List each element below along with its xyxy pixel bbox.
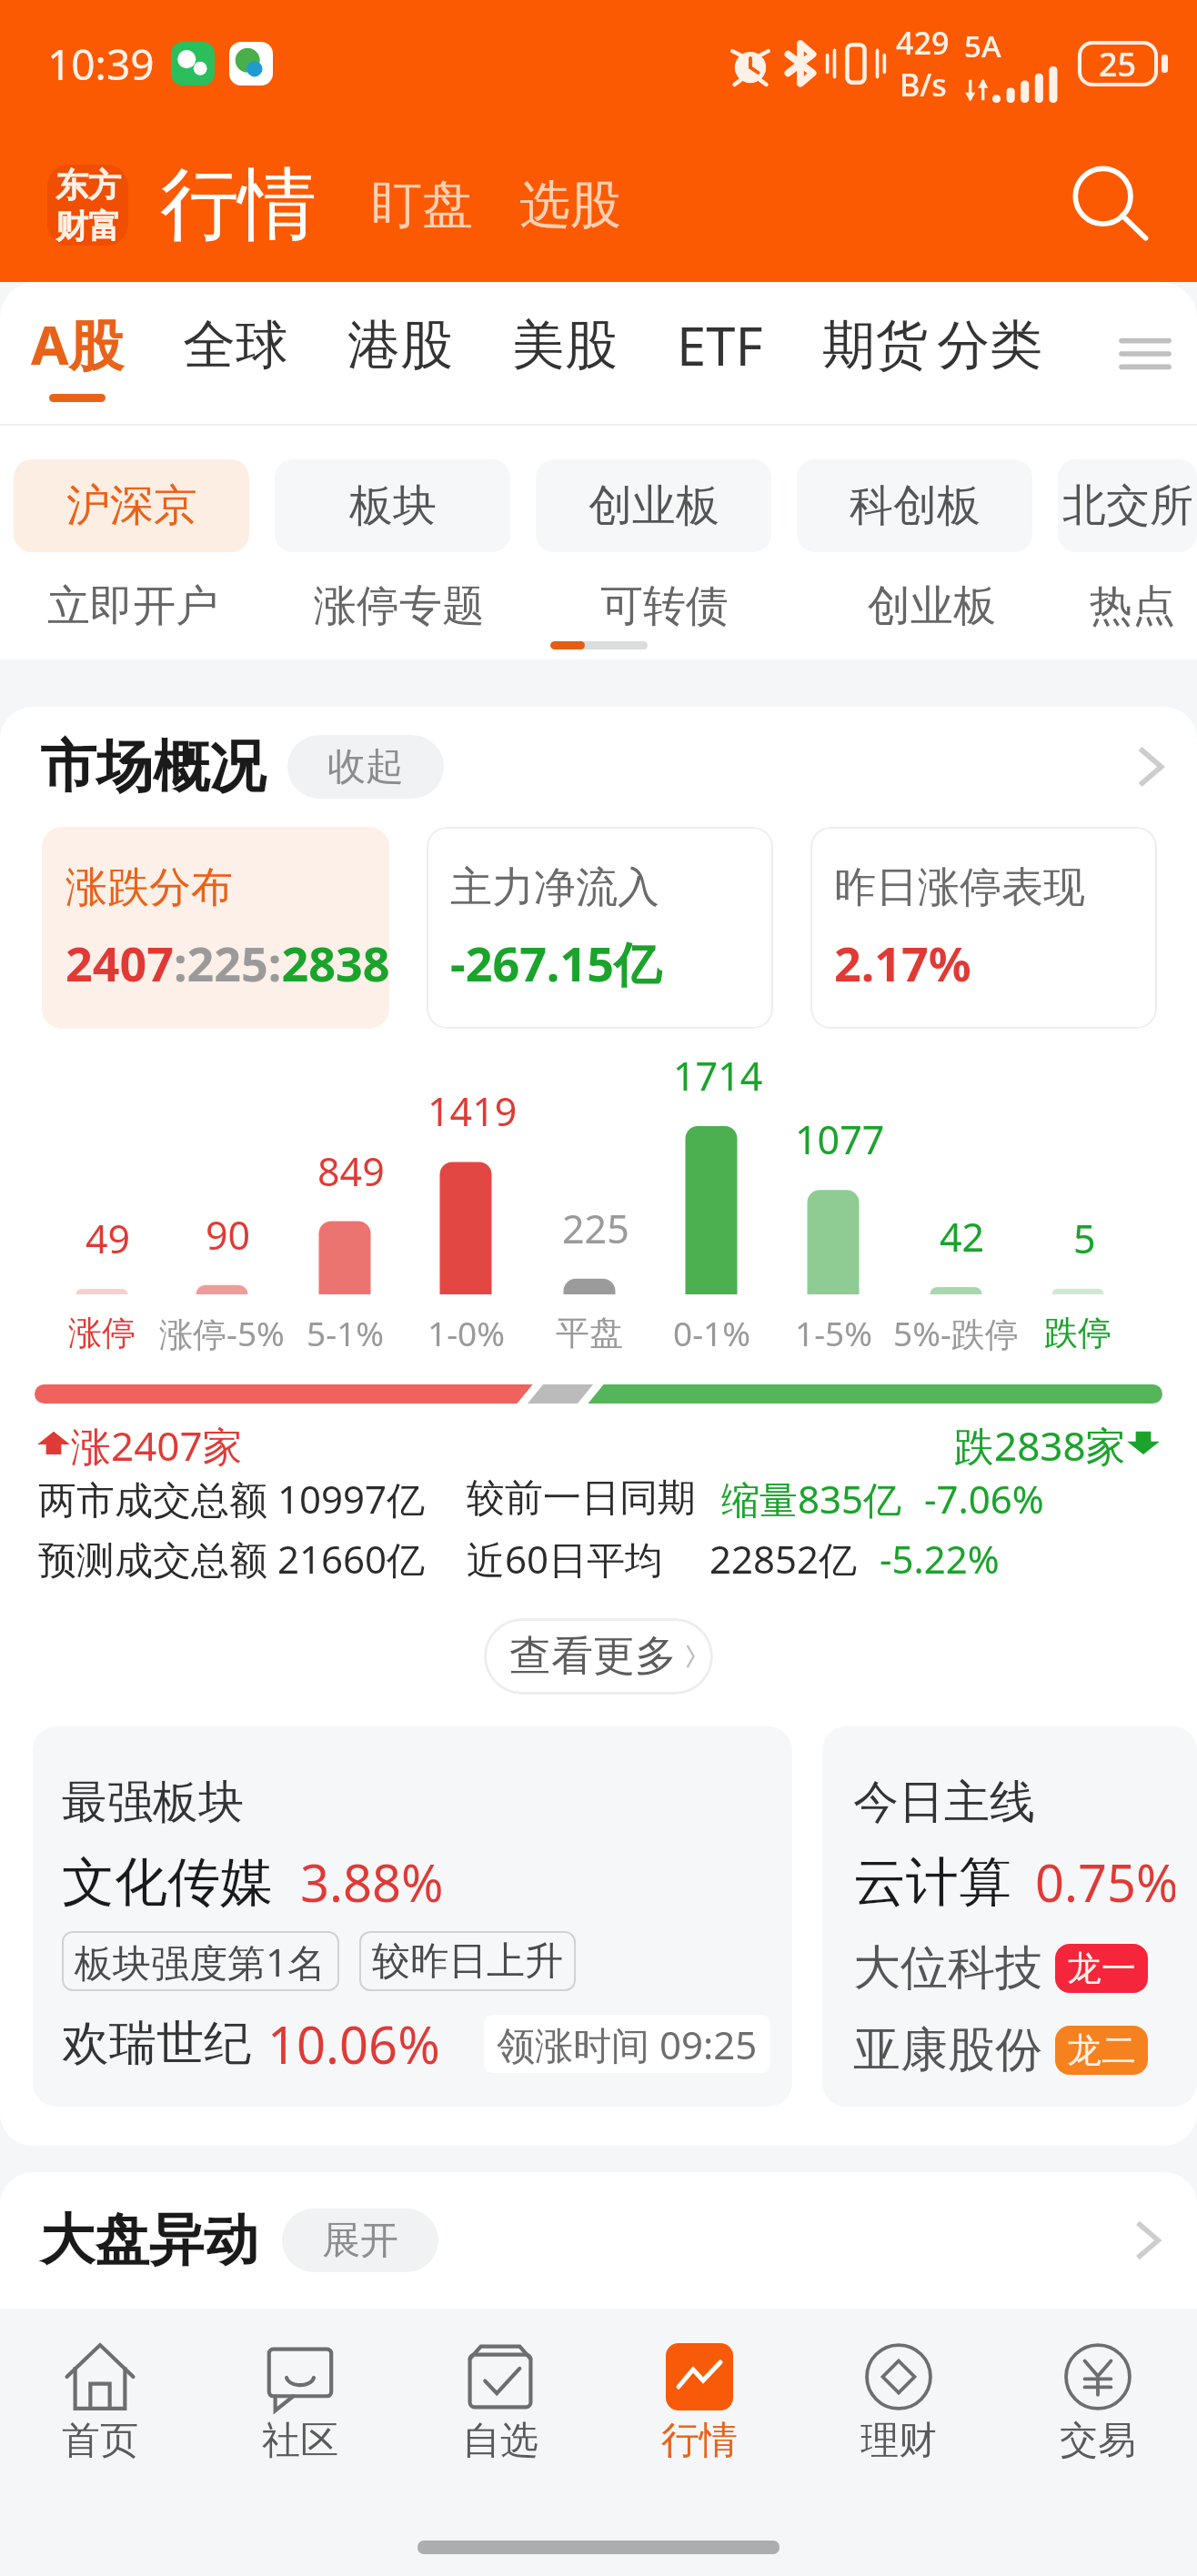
staticText: 42	[940, 1210, 985, 1263]
staticText: 5-1%	[307, 1310, 384, 1355]
button[interactable]: 分类	[937, 312, 1042, 378]
button[interactable]: 昨日涨停表现	[810, 827, 1157, 1029]
staticText: 849	[317, 1144, 385, 1198]
button[interactable]: 理财	[799, 2342, 998, 2495]
button[interactable]: 创业板	[795, 570, 1068, 641]
staticText: 大盘异动	[40, 2206, 258, 2275]
staticText: 财富	[55, 206, 121, 246]
staticText: 预测成交总额 21660亿	[38, 1533, 426, 1584]
staticText: 最强板块	[62, 1774, 244, 1831]
staticText: 收起	[327, 743, 404, 791]
staticText: 全球	[183, 312, 288, 378]
staticText: 1419	[427, 1084, 518, 1138]
button[interactable]: 北交所	[1058, 459, 1197, 552]
staticText: 自选	[462, 2417, 538, 2465]
staticText: 缩量835亿	[721, 1473, 902, 1524]
staticText: 1-5%	[795, 1310, 872, 1355]
button[interactable]: 自选	[400, 2342, 599, 2495]
staticText: 49	[85, 1212, 131, 1265]
staticText: 昨日涨停表现	[834, 861, 1085, 914]
button[interactable]: 最强板块	[33, 1726, 792, 2107]
button[interactable]: 盯盘	[371, 173, 473, 237]
button[interactable]: 首页	[0, 2342, 200, 2495]
staticText: 0.75%	[1035, 1847, 1175, 1917]
staticText: 文化传媒	[62, 1849, 273, 1916]
button[interactable]: 沪深京	[14, 459, 249, 552]
staticText: 较前一日同期	[467, 1474, 696, 1523]
staticText: 225	[562, 1202, 629, 1255]
button[interactable]: 期货	[822, 312, 928, 378]
staticText: 板块	[349, 478, 437, 533]
button[interactable]: 大盘异动	[40, 2172, 1173, 2309]
staticText: 沪深京	[66, 478, 197, 533]
button[interactable]: More tabs	[1110, 318, 1181, 389]
staticText: 领涨时间 09:25	[497, 2018, 758, 2070]
staticText: 涨2407家	[71, 1418, 243, 1467]
staticText: 1714	[673, 1049, 763, 1102]
button[interactable]: 交易	[998, 2342, 1197, 2495]
staticText: -7.06%	[924, 1473, 1044, 1524]
staticText: 创业板	[868, 579, 996, 633]
button[interactable]: 热点	[1068, 570, 1197, 641]
staticText: 1077	[795, 1112, 885, 1166]
staticText: 欢瑞世纪	[62, 2014, 251, 2074]
staticText: 5	[1073, 1212, 1096, 1265]
staticText: 行情	[160, 156, 317, 254]
staticText: 跌2838家	[954, 1418, 1126, 1467]
button[interactable]: 可转债	[533, 570, 795, 641]
button[interactable]: 选股	[519, 173, 621, 237]
staticText: 429	[896, 22, 950, 64]
button[interactable]: 立即开户	[0, 570, 266, 641]
button[interactable]: 行情	[599, 2342, 799, 2495]
button[interactable]: 美股	[512, 312, 618, 378]
button[interactable]: 涨跌分布	[42, 827, 389, 1029]
button[interactable]: ETF	[677, 309, 763, 381]
button[interactable]: 主力净流入	[427, 827, 773, 1029]
staticText: 5%-跌停	[893, 1310, 1019, 1356]
button[interactable]: 全球	[183, 312, 288, 378]
button[interactable]: 涨停专题	[266, 570, 533, 641]
staticText: 主力净流入	[450, 861, 659, 914]
staticText: 10:39	[47, 35, 155, 93]
staticText: 22852亿	[709, 1533, 858, 1584]
staticText: 2.17%	[834, 931, 971, 995]
staticText: 分类	[937, 312, 1042, 378]
button[interactable]: 查看更多	[484, 1618, 713, 1695]
staticText: 科创板	[850, 478, 981, 533]
staticText: 2407:225:2838	[65, 931, 389, 995]
staticText: 10.06%	[267, 2009, 440, 2078]
button[interactable]: 创业板	[536, 459, 771, 552]
button[interactable]: 社区	[200, 2342, 400, 2495]
staticText: 理财	[860, 2417, 937, 2465]
staticText: 可转债	[600, 579, 729, 633]
staticText: 选股	[519, 173, 621, 237]
button[interactable]: 今日主线	[822, 1726, 1197, 2107]
staticText: 云计算	[853, 1849, 1011, 1916]
staticText: 行情	[661, 2417, 738, 2465]
button[interactable]: 科创板	[797, 459, 1032, 552]
staticText: 涨停专题	[314, 579, 485, 633]
staticText: 两市成交总额 10997亿	[38, 1473, 426, 1524]
button[interactable]: 市场概况	[40, 725, 1177, 809]
staticText: 今日主线	[853, 1774, 1035, 1831]
staticText: 交易	[1060, 2417, 1136, 2465]
staticText: 1-0%	[427, 1310, 505, 1355]
staticText: 龙二	[1067, 2028, 1136, 2072]
staticText: 盯盘	[371, 173, 473, 237]
button[interactable]: 港股	[347, 312, 453, 378]
button[interactable]: Search	[1055, 150, 1164, 259]
staticText: 立即开户	[47, 579, 218, 633]
staticText: 港股	[347, 312, 453, 378]
button[interactable]: A股	[31, 307, 124, 402]
staticText: 板块强度第1名	[75, 1936, 327, 1987]
staticText: 90	[206, 1208, 251, 1262]
staticText: 0-1%	[673, 1310, 750, 1355]
staticText: 美股	[512, 312, 618, 378]
staticText: 龙一	[1067, 1947, 1136, 1990]
staticText: 首页	[62, 2417, 138, 2465]
staticText: -267.15亿	[450, 931, 661, 995]
button[interactable]: 板块	[275, 459, 510, 552]
staticText: 市场概况	[40, 731, 266, 802]
staticText: 跌停	[1044, 1312, 1111, 1354]
staticText: -5.22%	[880, 1533, 1000, 1584]
